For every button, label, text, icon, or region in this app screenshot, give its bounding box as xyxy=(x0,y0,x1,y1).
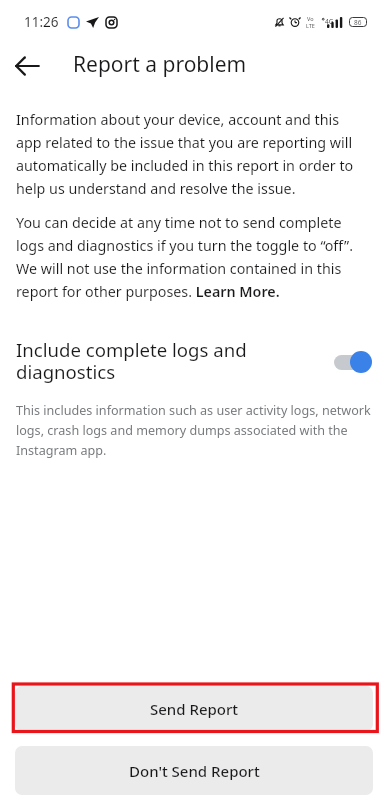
staticText: 86 xyxy=(354,18,362,27)
staticText: Information about your device, account a… xyxy=(16,107,361,199)
staticText: Include complete logs and diagnostics xyxy=(16,340,318,384)
staticText: You can decide at any time not to send c… xyxy=(16,210,361,302)
staticText: Don't Send Report xyxy=(129,761,260,781)
staticText: LTE xyxy=(306,22,315,29)
button[interactable]: Send Report xyxy=(15,686,373,731)
button[interactable]: Back xyxy=(5,44,49,88)
button[interactable]: Include complete logs and diagnostics to… xyxy=(332,350,372,374)
button[interactable]: Include complete logs and diagnostics xyxy=(16,340,372,384)
staticText: 11:26 xyxy=(24,13,59,31)
staticText: Vo xyxy=(307,15,314,22)
button[interactable]: Don't Send Report xyxy=(15,746,373,795)
staticText: This includes information such as user a… xyxy=(16,399,372,459)
staticText: Report a problem xyxy=(73,52,247,78)
staticText: 4G xyxy=(325,17,334,26)
staticText: Send Report xyxy=(150,699,239,719)
